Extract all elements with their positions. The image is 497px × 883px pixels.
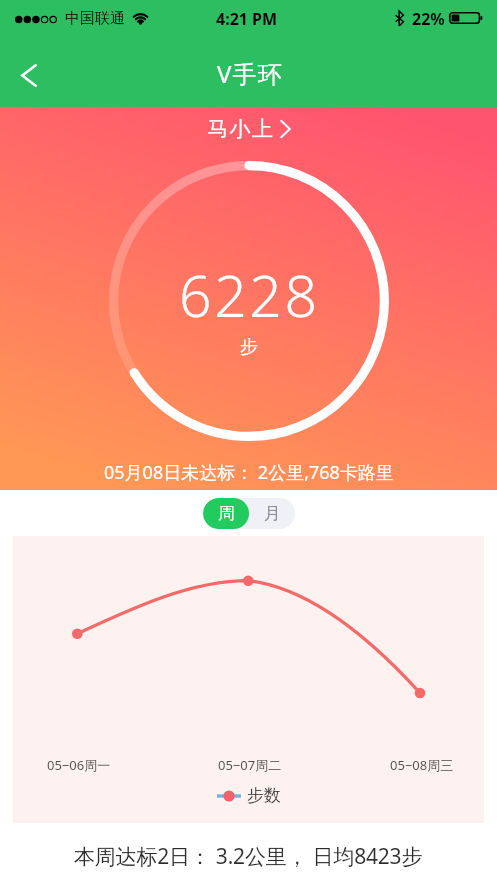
staticText: 马小上 [207,116,275,142]
staticText: 步 [240,336,258,359]
staticText: 步数 [247,785,281,806]
button[interactable]: 周 [203,498,249,529]
button[interactable]: 月 [249,498,295,529]
staticText: 中国联通 [65,9,125,28]
staticText: V手环 [217,57,283,90]
staticText: 月 [264,503,281,524]
staticText: 22% [412,8,445,30]
staticText: 6228 [179,256,320,334]
staticText: 4:21 PM [216,8,278,30]
staticText: 05月08日未达标： 2公里,768卡路里 [104,460,394,485]
staticText: 05−07周二 [218,756,282,774]
staticText: 05−08周三 [390,756,454,774]
staticText: 本周达标2日： 3.2公里， 日均8423步 [74,842,423,871]
staticText: 周 [218,503,235,524]
button[interactable]: 马小上 [201,113,297,145]
staticText: 05−06周一 [47,756,111,774]
button[interactable]: Back [4,51,54,99]
